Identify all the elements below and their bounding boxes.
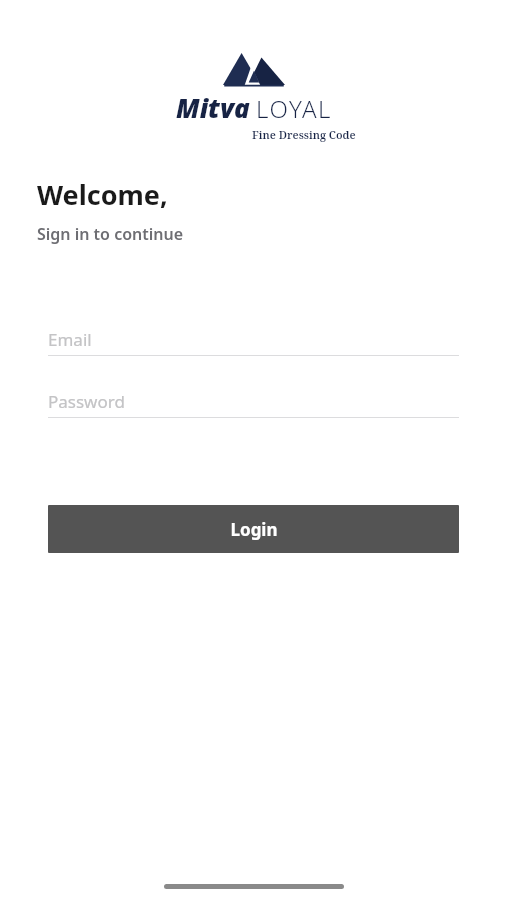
button[interactable]: Login [48, 505, 459, 553]
staticText: Sign in to continue [37, 223, 184, 245]
staticText: LOYAL [256, 92, 332, 125]
button[interactable]: Password [48, 385, 459, 418]
staticText: Fine Dressing Code [252, 127, 356, 142]
button[interactable]: Email [48, 323, 459, 356]
staticText: Password [48, 390, 125, 413]
staticText: Email [48, 328, 92, 351]
staticText: Mitva [176, 90, 250, 125]
staticText: Welcome, [37, 176, 168, 213]
staticText: Login [230, 518, 278, 541]
